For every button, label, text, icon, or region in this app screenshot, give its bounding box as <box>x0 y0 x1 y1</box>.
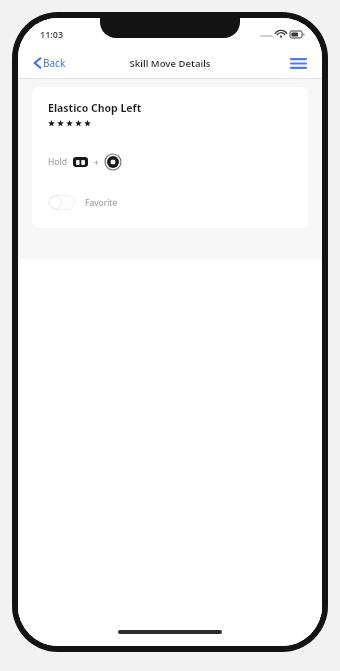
staticText: Elastico Chop Left <box>48 101 142 115</box>
staticText: 11:03 <box>40 28 64 40</box>
staticText: Back <box>43 56 66 70</box>
staticText: Skill Move Details <box>129 57 211 70</box>
staticText: Favorite <box>85 197 118 209</box>
button[interactable]: Menu <box>287 54 310 73</box>
staticText: Hold <box>48 156 67 168</box>
button[interactable]: Back <box>30 53 70 73</box>
button[interactable]: Favorite <box>48 193 118 212</box>
staticText: + <box>94 157 99 168</box>
